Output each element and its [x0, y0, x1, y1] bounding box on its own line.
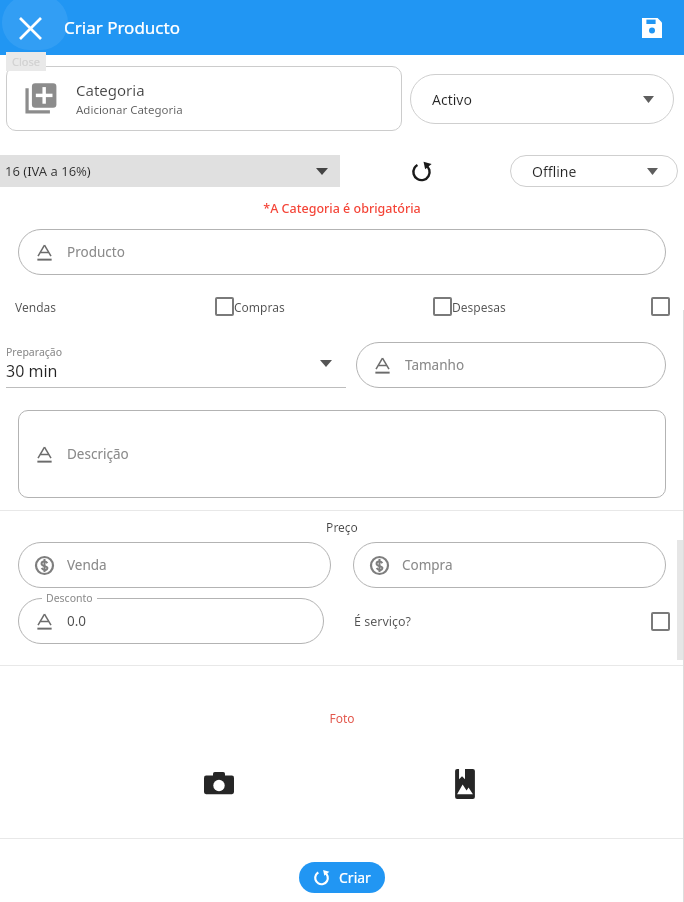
- staticText: Criar Producto: [64, 16, 180, 39]
- staticText: Compra: [402, 556, 453, 574]
- button[interactable]: Producto: [18, 229, 666, 275]
- button[interactable]: Criar: [299, 862, 385, 893]
- button[interactable]: Refresh: [400, 155, 442, 187]
- button[interactable]: Categoria: [6, 66, 402, 131]
- button[interactable]: Compras: [234, 297, 452, 316]
- staticText: Activo: [432, 90, 472, 109]
- button[interactable]: Compra: [353, 542, 666, 588]
- button[interactable]: Activo: [410, 74, 674, 124]
- staticText: Preparação: [6, 345, 63, 359]
- staticText: Close: [12, 54, 40, 69]
- button[interactable]: É serviço?: [354, 612, 670, 631]
- staticText: Producto: [67, 243, 125, 261]
- button[interactable]: Descrição: [18, 410, 666, 498]
- button[interactable]: 16 (IVA a 16%): [0, 155, 340, 187]
- button[interactable]: 0.0: [18, 598, 324, 644]
- staticText: Venda: [67, 556, 107, 574]
- button[interactable]: Preparação: [6, 338, 346, 388]
- staticText: 16 (IVA a 16%): [5, 162, 91, 180]
- button[interactable]: Venda: [18, 542, 331, 588]
- staticText: Criar: [339, 868, 371, 887]
- staticText: Tamanho: [405, 356, 465, 374]
- button[interactable]: Choose from gallery: [437, 756, 493, 812]
- staticText: Preço: [0, 519, 684, 535]
- button[interactable]: Close: [6, 4, 54, 52]
- button[interactable]: Vendas: [15, 297, 234, 316]
- staticText: Desconto: [46, 591, 93, 605]
- staticText: *A Categoria é obrigatória: [0, 200, 684, 217]
- staticText: É serviço?: [354, 613, 411, 630]
- button[interactable]: Take photo: [191, 756, 247, 812]
- staticText: 0.0: [67, 612, 87, 630]
- staticText: Despesas: [452, 299, 506, 315]
- button[interactable]: Offline: [510, 155, 678, 187]
- button[interactable]: Save: [630, 6, 674, 50]
- staticText: Vendas: [15, 299, 57, 315]
- staticText: Categoria: [76, 80, 145, 100]
- button[interactable]: Despesas: [452, 297, 670, 316]
- staticText: Offline: [532, 162, 577, 181]
- staticText: Compras: [234, 299, 285, 315]
- staticText: Adicionar Categoria: [76, 102, 183, 118]
- staticText: 30 min: [6, 360, 58, 382]
- staticText: Foto: [0, 710, 684, 726]
- button[interactable]: Tamanho: [356, 342, 666, 388]
- staticText: Descrição: [67, 445, 129, 463]
